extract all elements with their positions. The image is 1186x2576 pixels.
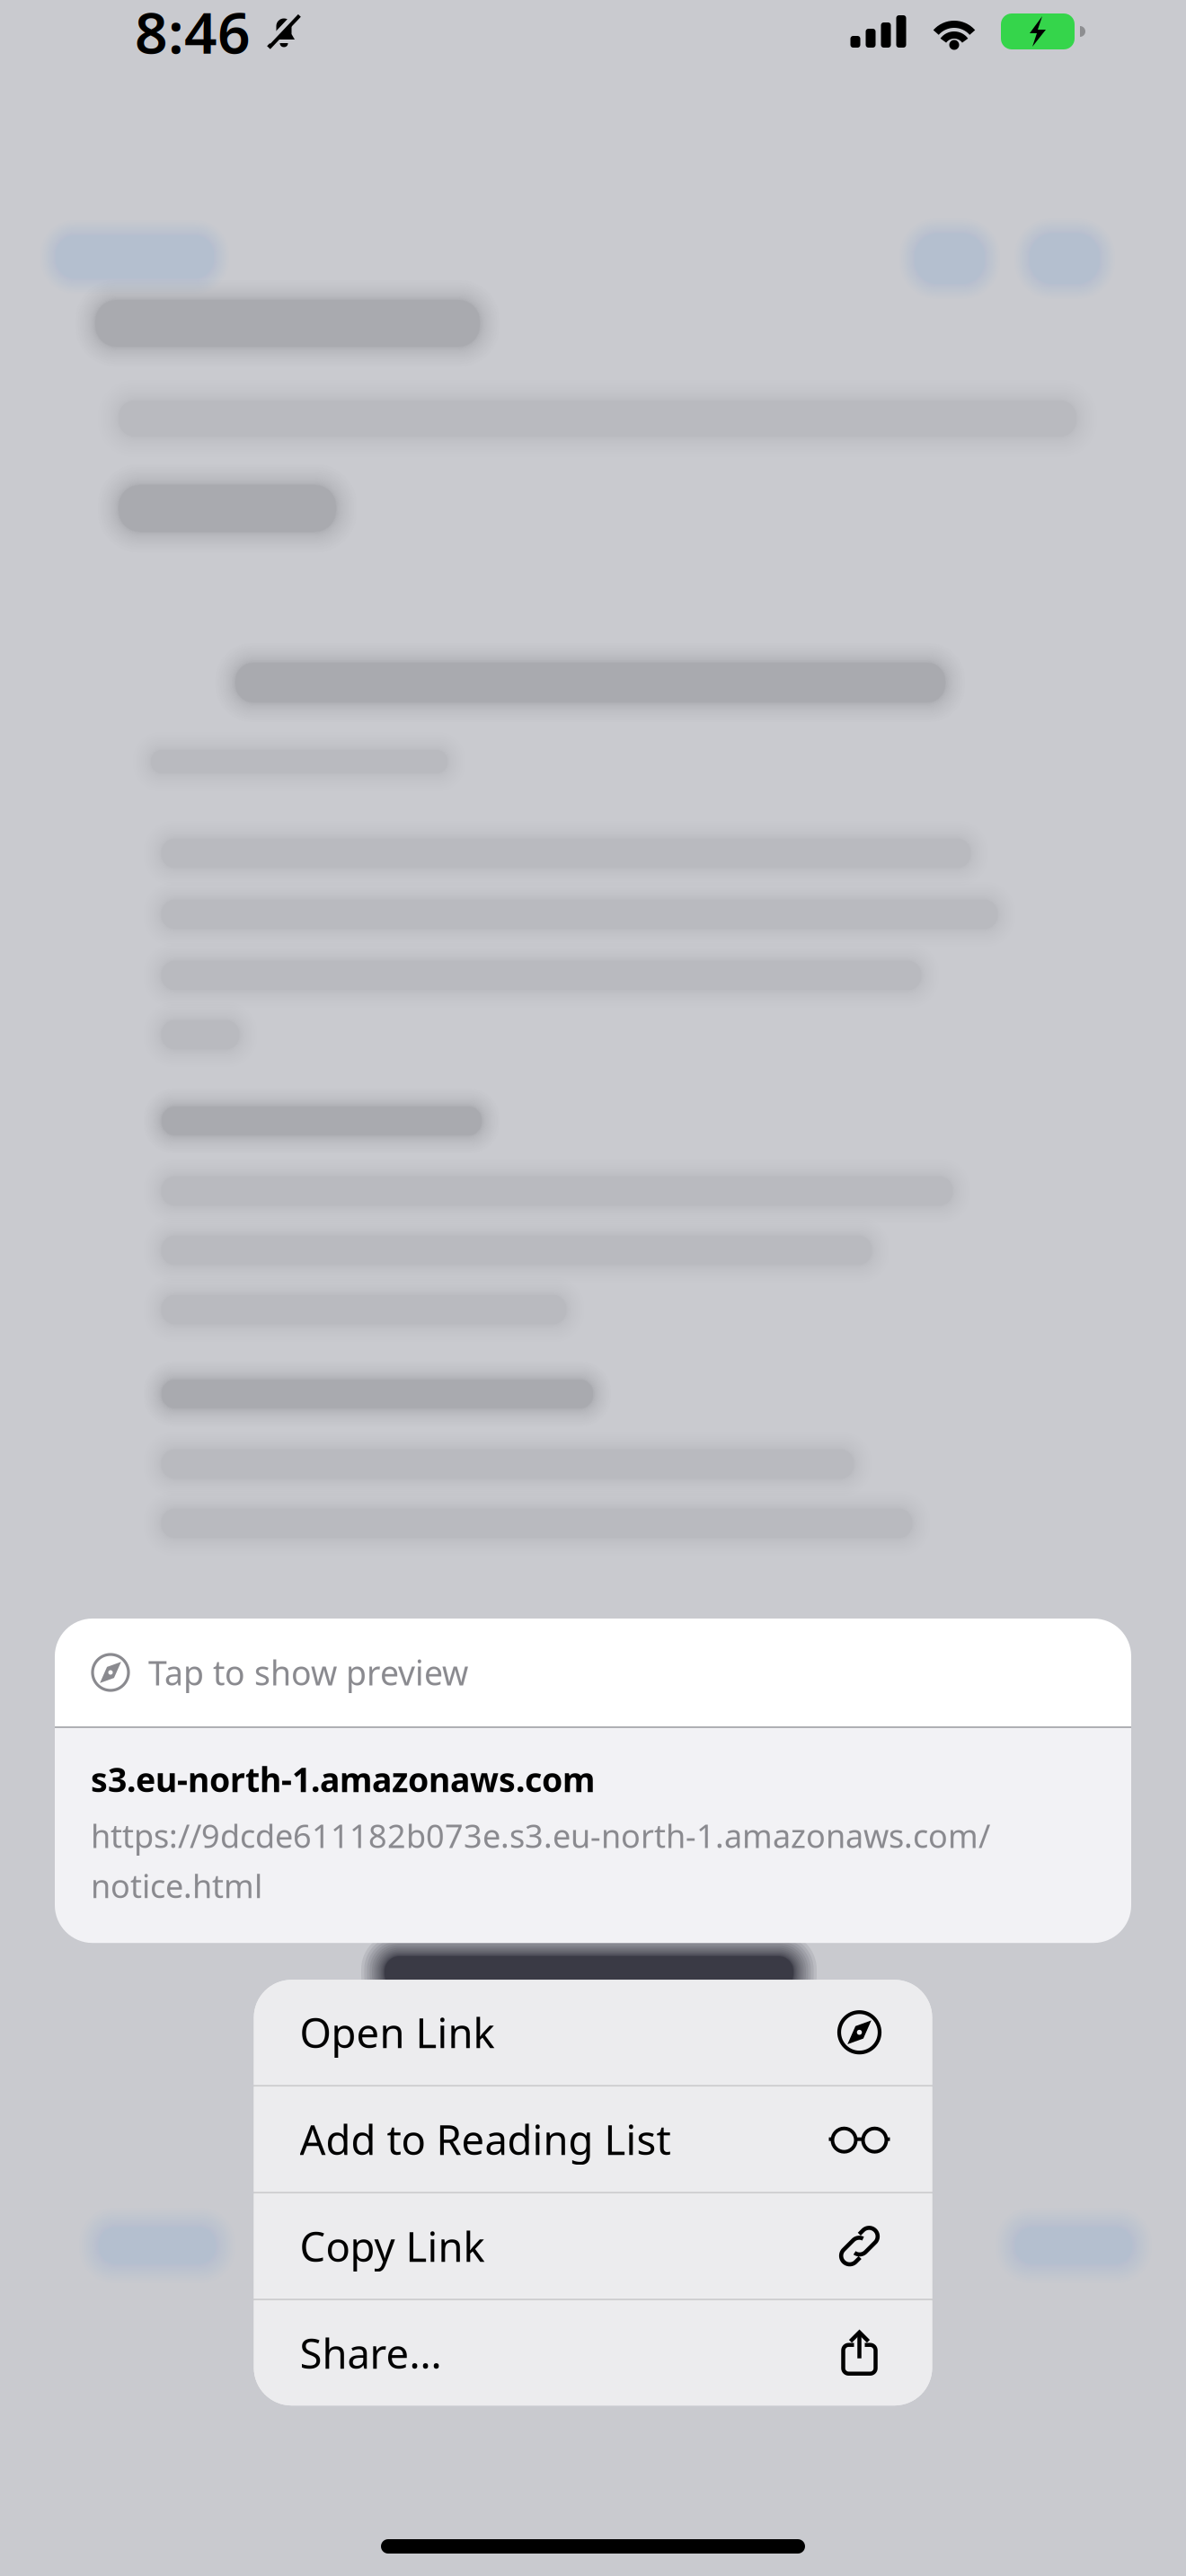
staticText: Add to Reading List [300,2112,671,2166]
button[interactable]: Tap to show preview [55,1619,1131,1943]
staticText: Copy Link [300,2219,485,2273]
staticText: Tap to show preview [148,1650,468,1695]
staticText: s3.eu-north-1.amazonaws.com [91,1757,595,1801]
staticText: Open Link [300,2005,495,2059]
button[interactable]: Share... [254,2300,932,2406]
staticText: notice.html [91,1864,262,1907]
staticText: Share... [300,2326,442,2380]
button[interactable]: Add to Reading List [254,2087,932,2192]
staticText: 8:46 [135,0,251,70]
button[interactable]: Copy Link [254,2194,932,2299]
button[interactable]: Open Link [254,1980,932,2085]
staticText: https://9dcde611182b073e.s3.eu-north-1.a… [91,1814,990,1857]
